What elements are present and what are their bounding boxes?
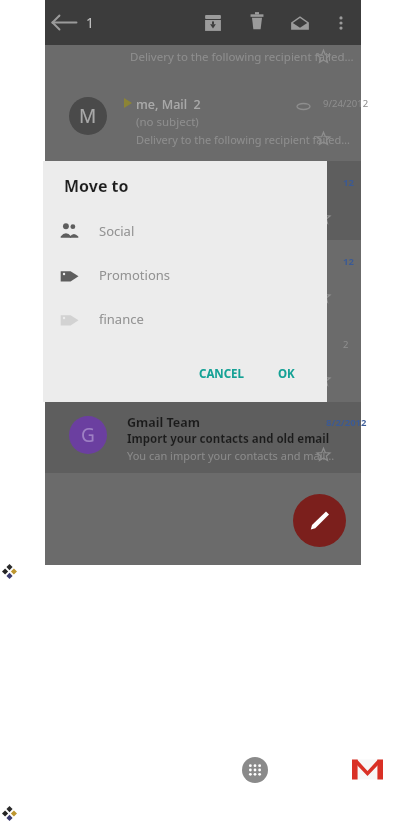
staticText: Social: [99, 222, 135, 240]
button[interactable]: Delivery to the following recipient fail…: [45, 45, 361, 82]
staticText: Gmail Team: [127, 414, 200, 431]
button[interactable]: 12: [45, 240, 361, 319]
button[interactable]: Archive: [201, 11, 225, 35]
button[interactable]: Social: [43, 214, 327, 248]
button[interactable]: Mark as read: [288, 11, 312, 35]
staticText: Import your contacts and old email: [127, 431, 330, 447]
staticText: finance: [99, 310, 144, 328]
button[interactable]: Delete: [245, 11, 269, 35]
staticText: 12: [343, 255, 354, 268]
staticText: OK: [278, 366, 295, 382]
staticText: Promotions: [99, 266, 171, 284]
button[interactable]: All apps: [242, 757, 268, 783]
staticText: 2: [343, 338, 349, 351]
staticText: You can import your contacts and mail…: [127, 448, 335, 463]
staticText: 8/2/2012: [326, 416, 367, 429]
staticText: G: [81, 422, 95, 448]
button[interactable]: Gmail: [352, 757, 383, 782]
button[interactable]: G: [45, 402, 361, 473]
staticText: M: [79, 103, 97, 129]
staticText: Delivery to the following recipient fail…: [136, 132, 350, 147]
staticText: CANCEL: [199, 366, 244, 382]
staticText: (no subject): [136, 114, 199, 130]
button[interactable]: 2: [45, 323, 361, 402]
staticText: Move to: [64, 175, 129, 197]
button[interactable]: Promotions: [43, 258, 327, 292]
staticText: 9/24/2012: [323, 97, 369, 110]
button[interactable]: More options: [329, 11, 353, 35]
staticText: 1: [86, 13, 95, 32]
button[interactable]: Compose: [293, 494, 346, 547]
button[interactable]: finance: [43, 302, 327, 336]
staticText: Delivery to the following recipient fail…: [130, 49, 354, 65]
staticText: me, Mail 2: [136, 96, 201, 113]
button[interactable]: Back: [48, 6, 81, 39]
staticText: 12: [343, 176, 354, 189]
button[interactable]: OK: [267, 361, 305, 387]
button[interactable]: CANCEL: [189, 361, 253, 387]
button[interactable]: 12: [45, 161, 361, 240]
button[interactable]: M: [45, 82, 361, 161]
